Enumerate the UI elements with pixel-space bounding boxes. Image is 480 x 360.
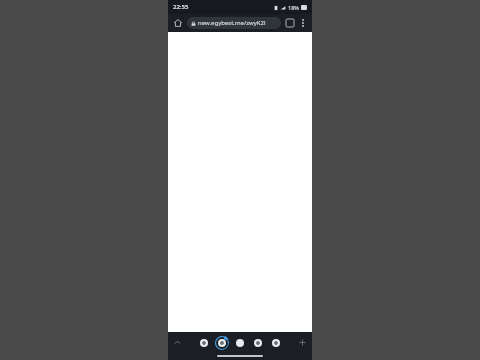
button[interactable]: Expand tabs: [171, 336, 184, 349]
staticText: 18%: [288, 4, 299, 11]
button[interactable]: New tab: [296, 336, 309, 349]
button[interactable]: More options: [297, 17, 309, 29]
staticText: 22:55: [173, 3, 189, 11]
button[interactable]: new.egybest.me/zwyK2l: [187, 17, 281, 29]
button[interactable]: Switch tab: [232, 335, 247, 350]
button[interactable]: Current tab: [214, 335, 229, 350]
button[interactable]: Tabs: [283, 16, 297, 30]
staticText: new.egybest.me/zwyK2l: [198, 19, 266, 27]
button[interactable]: Home: [171, 16, 185, 30]
button[interactable]: Switch tab: [196, 335, 211, 350]
button[interactable]: Switch tab: [268, 335, 283, 350]
button[interactable]: Switch tab: [250, 335, 265, 350]
